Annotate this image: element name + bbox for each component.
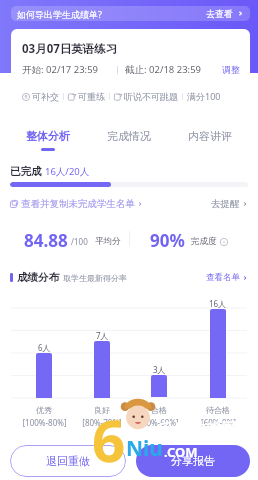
staticText: 优秀 xyxy=(36,405,52,415)
button[interactable]: 查看名单 xyxy=(206,272,248,283)
staticText: 84.88 xyxy=(24,229,68,249)
button[interactable]: 查看并复制未完成学生名单 xyxy=(10,198,143,210)
staticText: .COM xyxy=(164,443,198,461)
staticText: 完成度 xyxy=(191,236,217,247)
staticText: [70%-60%] xyxy=(139,417,179,428)
staticText: 平均分 xyxy=(95,236,121,247)
button[interactable]: 调整 xyxy=(222,64,240,75)
staticText: 已完成 xyxy=(10,165,42,178)
staticText: [80%-70%] xyxy=(82,417,122,428)
staticText: 调整 xyxy=(222,64,240,75)
staticText: /100 xyxy=(71,236,88,247)
button[interactable]: 去提醒 xyxy=(211,198,248,210)
button[interactable]: 整体分析 xyxy=(8,126,88,154)
staticText: 7人 xyxy=(96,330,109,341)
staticText: 可重练 xyxy=(78,91,105,102)
staticText: 待合格 xyxy=(206,405,230,415)
staticText: 满分100 xyxy=(187,90,221,102)
staticText: 6人 xyxy=(38,342,51,353)
staticText: 如何导出学生成绩单? xyxy=(17,8,102,20)
staticText: 03月07日英语练习 xyxy=(22,41,118,57)
staticText: 开始: 02/17 23:59 xyxy=(22,63,99,76)
staticText: 查看并复制未完成学生名单 xyxy=(21,198,135,210)
staticText: 90% xyxy=(150,229,185,249)
button[interactable]: 分享报告 xyxy=(136,445,250,477)
staticText: 去查看 xyxy=(206,8,233,19)
staticText: 乐牛游戏网 xyxy=(157,420,237,440)
staticText: 3人 xyxy=(153,364,166,375)
staticText: [60%-0%] xyxy=(201,417,236,428)
staticText: 取学生最新得分率 xyxy=(63,273,127,283)
button[interactable]: 内容讲评 xyxy=(169,126,250,154)
staticText: 6 xyxy=(92,400,126,479)
staticText: [100%-80%] xyxy=(22,417,67,428)
staticText: Niu xyxy=(126,434,164,463)
staticText: 去提醒 xyxy=(211,198,240,210)
button[interactable]: 如何导出学生成绩单? xyxy=(11,6,250,21)
staticText: 听说不可跳题 xyxy=(124,91,178,102)
staticText: 完成情况 xyxy=(107,129,151,143)
staticText: 合格 xyxy=(151,405,167,415)
staticText: 截止: 02/18 23:59 xyxy=(125,63,202,76)
staticText: 可补交 xyxy=(32,91,59,102)
staticText: 成绩分布 xyxy=(17,271,59,284)
staticText: 退回重做 xyxy=(46,454,90,468)
staticText: 分享报告 xyxy=(171,454,215,468)
button[interactable]: 完成情况 xyxy=(88,126,169,154)
staticText: 内容讲评 xyxy=(188,129,232,143)
staticText: 16人 xyxy=(209,298,227,309)
staticText: 查看名单 xyxy=(206,272,240,283)
staticText: 整体分析 xyxy=(26,129,70,143)
staticText: 16人/20人 xyxy=(45,165,90,178)
button[interactable]: 退回重做 xyxy=(10,445,126,477)
staticText: 良好 xyxy=(94,405,110,415)
